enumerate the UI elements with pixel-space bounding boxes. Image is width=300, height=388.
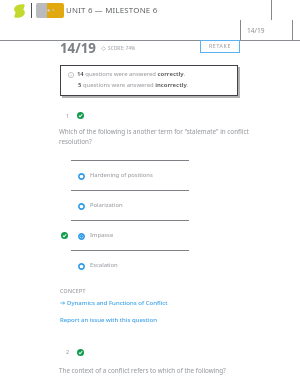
staticText: 1 (66, 112, 70, 119)
button[interactable]: Hardening of positions (71, 162, 189, 189)
staticText: Escalation (90, 261, 118, 269)
staticText: RETAKE (209, 43, 231, 50)
button[interactable]: RETAKE (200, 40, 240, 53)
button[interactable]: Escalation (71, 252, 189, 279)
button[interactable]: Report an issue with this question (60, 315, 157, 323)
button[interactable]: Home (14, 4, 25, 18)
staticText: 14 questions were answered correctly. (77, 70, 186, 78)
button[interactable]: Course (36, 3, 64, 18)
staticText: Hardening of positions (90, 171, 153, 179)
staticText: Impasse (90, 231, 114, 239)
staticText: Report an issue with this question (60, 315, 157, 323)
staticText: 2 (66, 348, 70, 355)
button[interactable]: Impasse (71, 222, 189, 249)
button[interactable]: Polarization (71, 192, 189, 219)
staticText: 14/19 (60, 39, 96, 57)
staticText: 14/19 (247, 26, 265, 35)
button[interactable]: Dynamics and Functions of Conflict (60, 298, 168, 306)
staticText: Dynamics and Functions of Conflict (67, 298, 168, 306)
staticText: The context of a conflict refers to whic… (59, 366, 299, 375)
staticText: 5 questions were answered incorrectly. (78, 81, 189, 89)
staticText: SCORE: 74% (108, 45, 136, 51)
staticText: Polarization (90, 201, 123, 209)
staticText: UNIT 6 — MILESTONE 6 (66, 5, 158, 16)
staticText: Which of the following is another term f… (59, 127, 299, 145)
staticText: CONCEPT (60, 287, 86, 294)
